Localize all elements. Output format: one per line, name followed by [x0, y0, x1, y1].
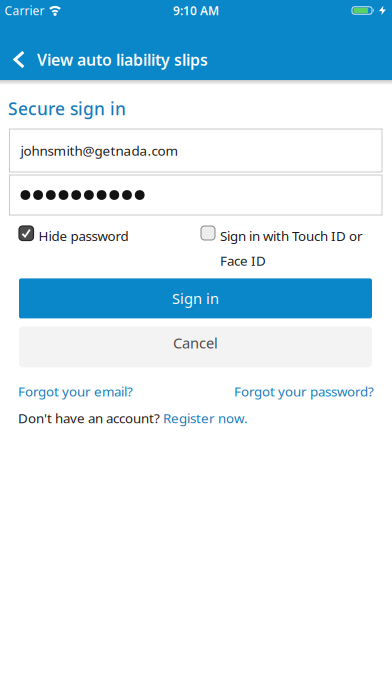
staticText: johnsmith@getnada.com [20, 141, 178, 160]
staticText: Register now. [163, 409, 248, 427]
staticText: Secure sign in [8, 97, 126, 120]
button[interactable] [0, 50, 25, 68]
button[interactable]: Forgot your password? [234, 382, 374, 400]
staticText: 9:10 AM [173, 2, 219, 18]
button[interactable]: Sign in [19, 278, 372, 318]
button[interactable]: View auto liability slips [37, 49, 208, 70]
button[interactable]: Sign in with Touch ID or [201, 226, 363, 269]
staticText: View auto liability slips [37, 49, 208, 70]
staticText: Sign in with Touch ID or [220, 227, 363, 245]
staticText: Forgot your password? [234, 382, 374, 400]
button[interactable]: Hide password [19, 226, 128, 245]
staticText: Hide password [38, 227, 128, 245]
staticText: Forgot your email? [18, 382, 133, 400]
staticText: Carrier [4, 2, 44, 18]
button[interactable]: Forgot your email? [18, 382, 133, 400]
staticText: Don't have an account? [18, 409, 163, 427]
button[interactable]: Don't have an account? [18, 409, 248, 427]
staticText: Sign in [172, 289, 219, 308]
staticText: Face ID [220, 252, 266, 269]
button[interactable]: Cancel [19, 326, 372, 367]
staticText: Cancel [173, 333, 218, 353]
